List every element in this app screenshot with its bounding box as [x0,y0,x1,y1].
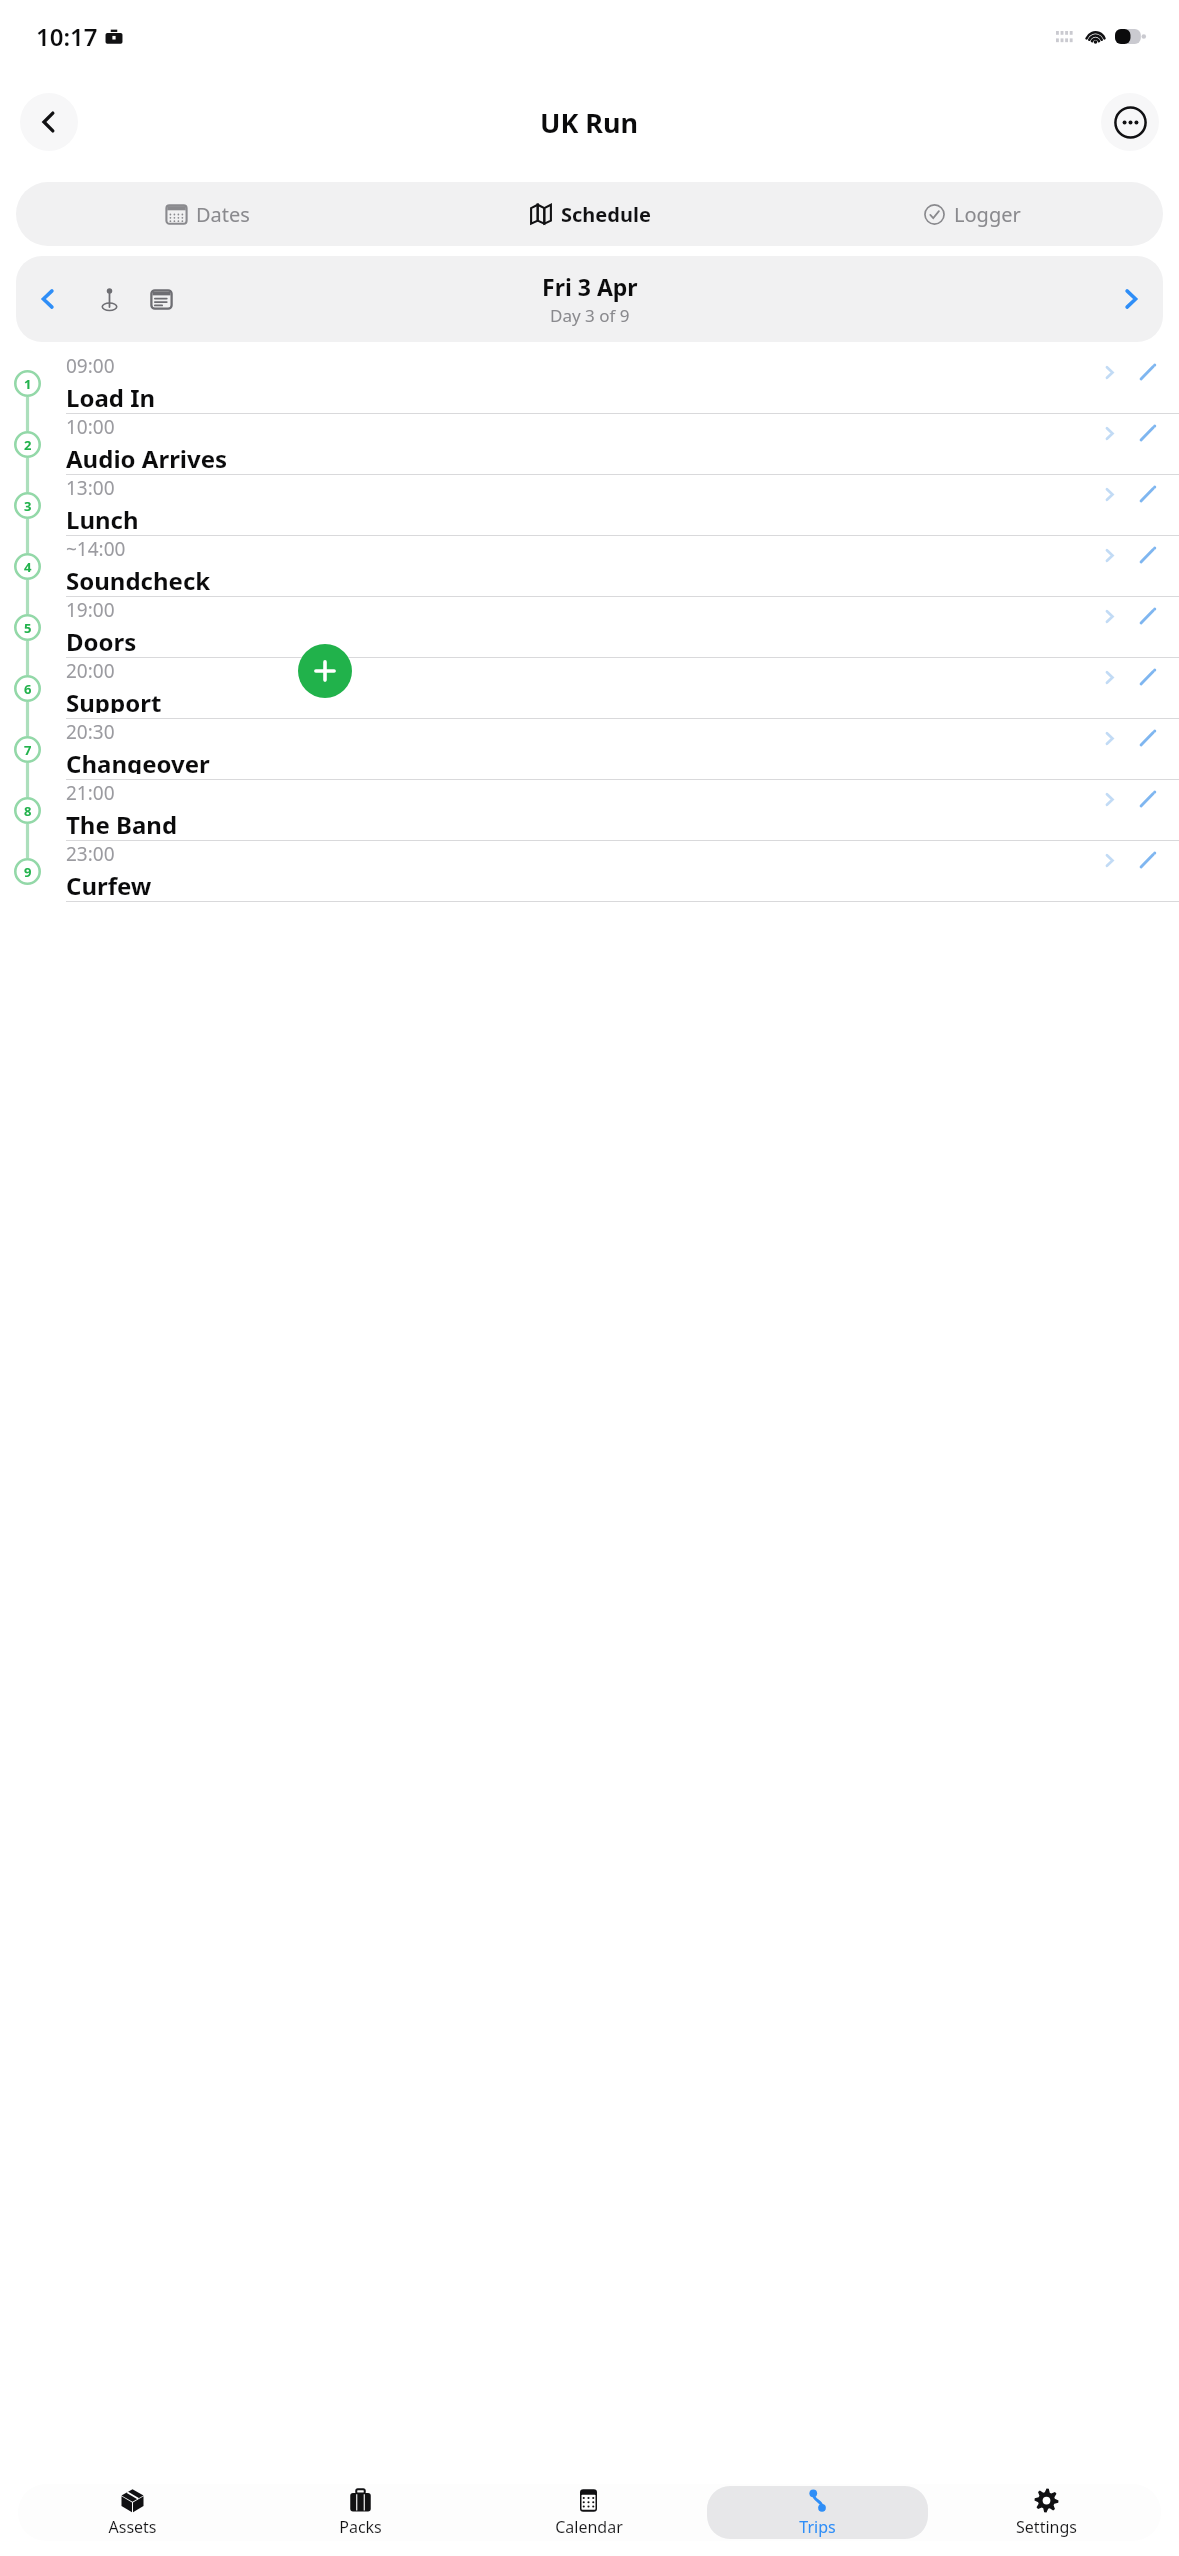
button[interactable]: 3 [0,475,1179,536]
staticText: 21:00 [66,780,115,806]
button[interactable]: Assets [22,2486,242,2539]
button[interactable]: Open Changeover [1095,724,1123,752]
button[interactable]: Open Lunch [1095,480,1123,508]
staticText: 2 [24,436,32,454]
button[interactable]: 6 [0,658,1179,719]
button[interactable]: 2 [0,414,1179,475]
staticText: UK Run [540,104,639,141]
staticText: 1 [24,375,32,393]
button[interactable]: 5 [0,597,1179,658]
button[interactable]: Add schedule item [298,644,352,698]
staticText: Doors [66,625,137,652]
staticText: 10:00 [66,414,115,440]
staticText: 3 [24,497,32,515]
staticText: Fri 3 Apr [542,271,638,302]
staticText: 6 [24,680,32,698]
staticText: 20:00 [66,658,115,684]
button[interactable]: 4 [0,536,1179,597]
staticText: Curfew [66,869,152,896]
button[interactable]: Schedule [399,182,781,246]
staticText: 13:00 [66,475,115,501]
staticText: Trips [799,2516,836,2538]
button[interactable]: Edit The Band [1133,785,1161,813]
button[interactable]: Edit Lunch [1133,480,1161,508]
button[interactable]: Edit Doors [1133,602,1161,630]
staticText: 19:00 [66,597,115,623]
button[interactable]: Calendar [478,2486,699,2539]
staticText: Support [66,686,162,713]
button[interactable]: Edit Support [1133,663,1161,691]
staticText: 4 [24,558,32,576]
staticText: 09:00 [66,353,115,379]
button[interactable]: 8 [0,780,1179,841]
staticText: 20:30 [66,719,115,745]
button[interactable]: Logger [781,182,1163,246]
button[interactable]: 7 [0,719,1179,780]
button[interactable]: Previous day [24,275,72,323]
staticText: Load In [66,381,156,408]
button[interactable]: Back [20,93,78,151]
button[interactable]: Open Load In [1095,358,1123,386]
button[interactable]: Edit Audio Arrives [1133,419,1161,447]
button[interactable]: Trips [707,2486,928,2539]
button[interactable]: Open Doors [1095,602,1123,630]
button[interactable]: Edit Load In [1133,358,1161,386]
staticText: Lunch [66,503,139,530]
staticText: Soundcheck [66,564,211,591]
button[interactable]: Venue location [86,276,132,322]
staticText: 8 [24,802,32,820]
staticText: Day 3 of 9 [550,304,630,327]
staticText: Changeover [66,747,210,774]
button[interactable]: Settings [936,2486,1157,2539]
staticText: Schedule [561,201,651,228]
staticText: Logger [954,201,1021,228]
staticText: 9 [24,863,32,881]
button[interactable]: Open Audio Arrives [1095,419,1123,447]
staticText: Packs [339,2516,382,2538]
staticText: 7 [24,741,32,759]
staticText: 5 [24,619,32,637]
button[interactable]: Open The Band [1095,785,1123,813]
button[interactable]: Open Soundcheck [1095,541,1123,569]
staticText: 10:17 [36,20,98,53]
button[interactable]: Open Curfew [1095,846,1123,874]
button[interactable]: Packs [250,2486,470,2539]
staticText: Dates [196,201,250,228]
staticText: Audio Arrives [66,442,228,469]
button[interactable]: 9 [0,841,1179,902]
button[interactable]: Next day [1107,275,1155,323]
button[interactable]: More options [1101,93,1159,151]
button[interactable]: Day notes [138,276,184,322]
staticText: 23:00 [66,841,115,867]
button[interactable]: Open Support [1095,663,1123,691]
staticText: The Band [66,808,178,835]
button[interactable]: Dates [16,182,399,246]
button[interactable]: Edit Soundcheck [1133,541,1161,569]
staticText: ~14:00 [66,536,126,562]
staticText: Settings [1016,2516,1077,2538]
staticText: Calendar [555,2516,623,2538]
button[interactable]: Edit Changeover [1133,724,1161,752]
button[interactable]: Edit Curfew [1133,846,1161,874]
staticText: Assets [108,2516,157,2538]
button[interactable]: 1 [0,353,1179,414]
